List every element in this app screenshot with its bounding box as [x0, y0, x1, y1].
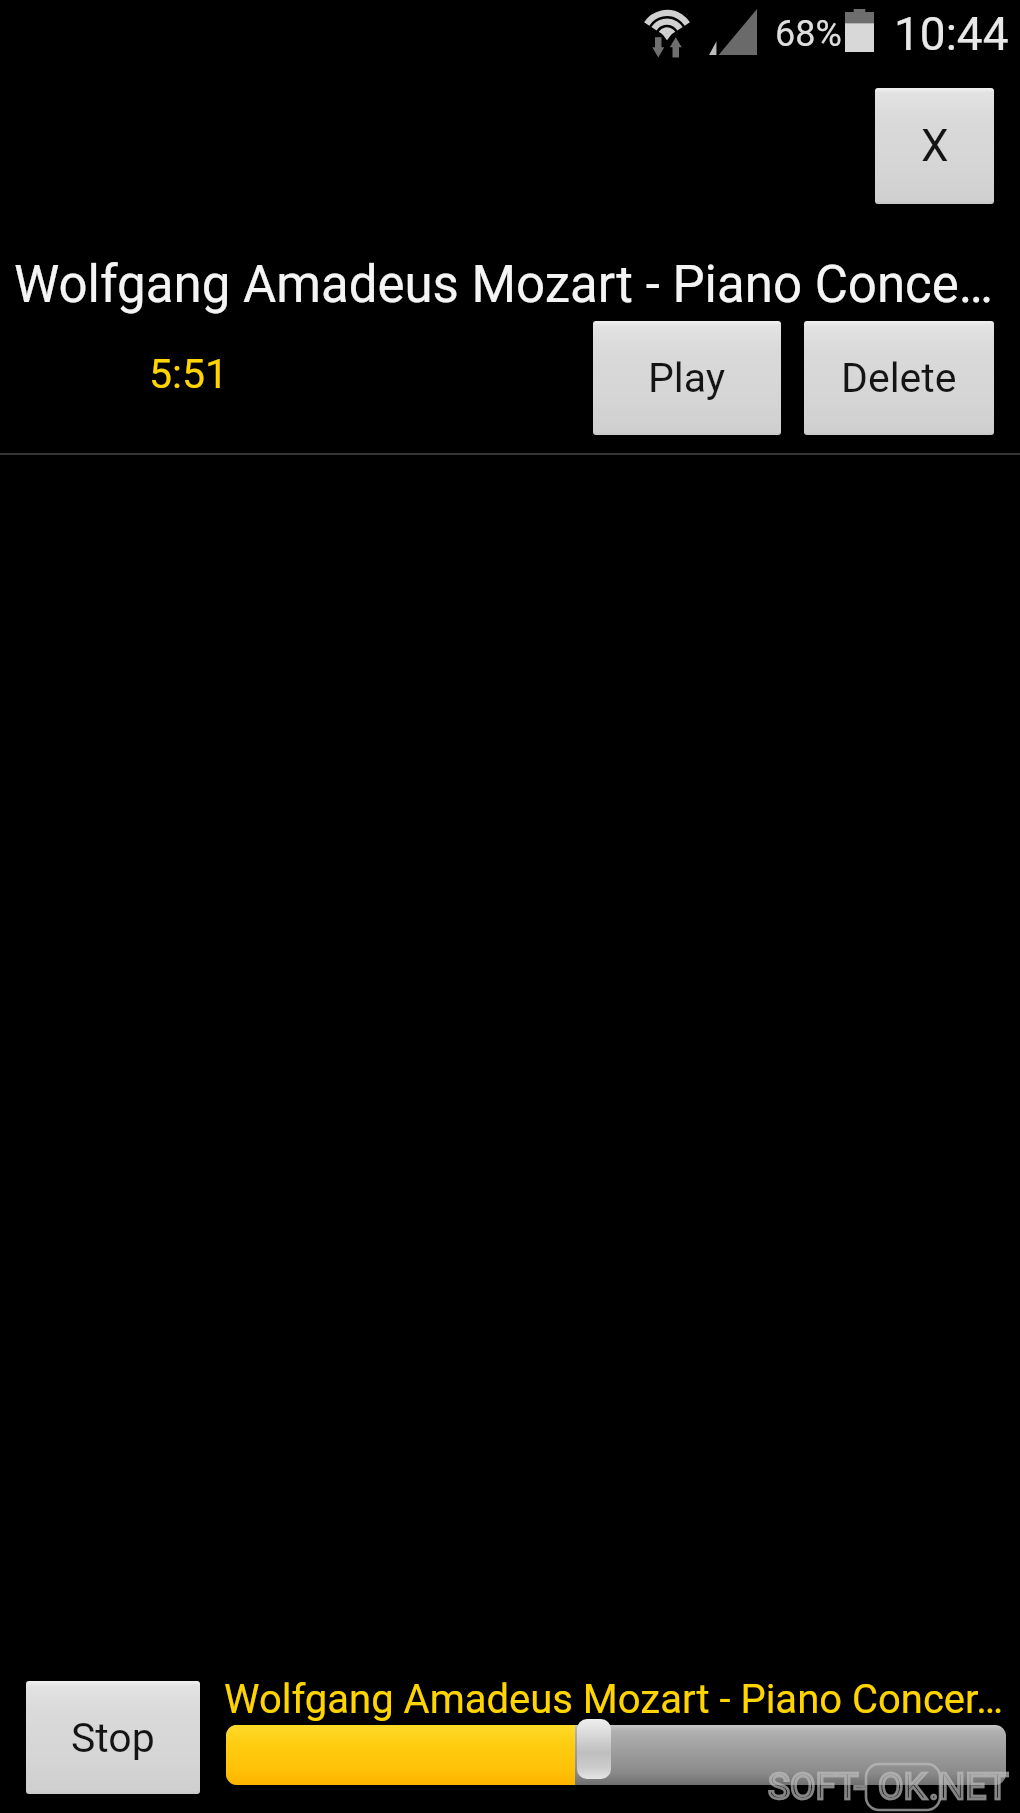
button[interactable]: Stop [26, 1681, 200, 1794]
staticText: 68% [775, 13, 842, 55]
staticText: Play [648, 354, 726, 402]
button[interactable]: Play [593, 321, 781, 435]
button[interactable]: Wolfgang Amadeus Mozart - Piano Conce… [0, 240, 1020, 453]
button[interactable]: Seek bar [226, 1725, 1006, 1785]
button[interactable]: Close [875, 88, 994, 204]
staticText: Wolfgang Amadeus Mozart - Piano Conce… [14, 255, 993, 315]
staticText: SOFT- [768, 1765, 865, 1808]
button[interactable]: Delete [804, 321, 994, 435]
staticText: Stop [71, 1714, 155, 1762]
staticText: .NET [929, 1765, 1009, 1808]
staticText: Delete [841, 354, 957, 402]
staticText: OK [878, 1765, 927, 1808]
staticText: 10:44 [894, 7, 1009, 61]
staticText: Wolfgang Amadeus Mozart - Piano Concer… [224, 1676, 1003, 1723]
staticText: 5:51 [149, 350, 229, 398]
staticText: X [921, 120, 949, 172]
